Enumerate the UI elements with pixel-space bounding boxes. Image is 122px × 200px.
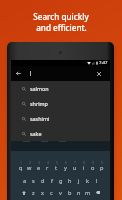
button[interactable]: 6 bbox=[61, 161, 70, 174]
staticText: 7 bbox=[74, 160, 76, 165]
button[interactable]: 0 bbox=[97, 161, 106, 174]
staticText: f bbox=[51, 177, 53, 185]
button[interactable]: Shift bbox=[18, 186, 29, 199]
staticText: n bbox=[77, 189, 81, 197]
button[interactable]: m bbox=[83, 186, 92, 199]
button[interactable]: Clear search bbox=[94, 69, 103, 78]
button[interactable]: d bbox=[38, 174, 47, 187]
staticText: 8 bbox=[83, 160, 85, 165]
staticText: q bbox=[19, 164, 23, 172]
staticText: 7:47 bbox=[99, 60, 108, 66]
staticText: salmon bbox=[30, 85, 49, 92]
staticText: w bbox=[27, 164, 32, 172]
button[interactable]: c bbox=[47, 186, 56, 199]
button[interactable]: 9 bbox=[88, 161, 97, 174]
staticText: sake bbox=[30, 130, 42, 137]
button[interactable]: 2 bbox=[25, 161, 34, 174]
staticText: d bbox=[41, 177, 45, 185]
button[interactable]: 7 bbox=[70, 161, 79, 174]
staticText: c bbox=[50, 189, 53, 197]
staticText: p bbox=[100, 164, 104, 172]
staticText: 3 bbox=[38, 160, 40, 165]
button[interactable]: sashimi bbox=[11, 111, 110, 126]
staticText: 1 bbox=[20, 160, 22, 165]
staticText: m bbox=[85, 189, 91, 197]
staticText: r bbox=[46, 164, 49, 172]
staticText: j bbox=[78, 177, 80, 185]
button[interactable]: Back bbox=[14, 69, 23, 78]
button[interactable]: a bbox=[20, 174, 29, 187]
button[interactable]: 1 bbox=[16, 161, 25, 174]
button[interactable]: l bbox=[92, 174, 101, 187]
staticText: o bbox=[91, 164, 95, 172]
button[interactable]: z bbox=[29, 186, 38, 199]
button[interactable]: 8 bbox=[79, 161, 88, 174]
button[interactable]: shrimp bbox=[11, 96, 110, 111]
button[interactable]: v bbox=[56, 186, 65, 199]
button[interactable]: j bbox=[74, 174, 83, 187]
button[interactable]: x bbox=[38, 186, 47, 199]
staticText: b bbox=[68, 189, 72, 197]
staticText: 4 bbox=[47, 160, 49, 165]
staticText: h bbox=[68, 177, 72, 185]
button[interactable]: n bbox=[74, 186, 83, 199]
staticText: t bbox=[55, 164, 58, 172]
button[interactable]: f bbox=[47, 174, 56, 187]
staticText: 0 bbox=[101, 160, 103, 165]
staticText: v bbox=[59, 189, 62, 197]
button[interactable]: b bbox=[65, 186, 74, 199]
button[interactable]: g bbox=[56, 174, 65, 187]
staticText: i bbox=[83, 164, 85, 172]
staticText: z bbox=[32, 189, 35, 197]
button[interactable]: 5 bbox=[52, 161, 61, 174]
staticText: 5 bbox=[56, 160, 58, 165]
button[interactable]: Backspace bbox=[92, 186, 103, 199]
button[interactable]: salmon bbox=[11, 81, 110, 96]
staticText: e bbox=[37, 164, 41, 172]
staticText: shrimp bbox=[30, 100, 48, 107]
button[interactable]: k bbox=[83, 174, 92, 187]
staticText: Search quickly bbox=[33, 11, 89, 22]
staticText: s bbox=[32, 177, 35, 185]
staticText: 9 bbox=[92, 160, 94, 165]
button[interactable]: 4 bbox=[43, 161, 52, 174]
staticText: k bbox=[86, 177, 89, 185]
staticText: 2 bbox=[29, 160, 31, 165]
staticText: x bbox=[41, 189, 44, 197]
staticText: y bbox=[64, 164, 67, 172]
button[interactable]: sake bbox=[11, 126, 110, 141]
staticText: and efficient. bbox=[36, 22, 87, 33]
staticText: u bbox=[73, 164, 77, 172]
staticText: sashimi bbox=[30, 115, 50, 122]
button[interactable]: s bbox=[29, 174, 38, 187]
staticText: a bbox=[23, 177, 27, 185]
button[interactable]: h bbox=[65, 174, 74, 187]
staticText: l bbox=[96, 177, 98, 185]
button[interactable]: 3 bbox=[34, 161, 43, 174]
staticText: g bbox=[59, 177, 63, 185]
staticText: 6 bbox=[65, 160, 67, 165]
